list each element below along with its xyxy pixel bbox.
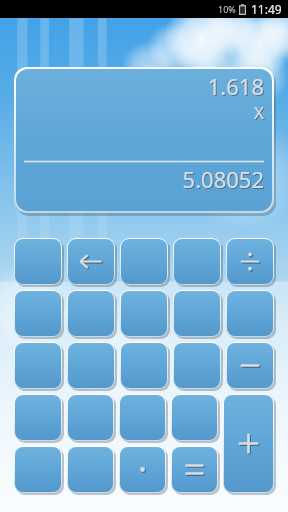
button[interactable]: +/- xyxy=(173,238,221,285)
staticText: 10% xyxy=(218,3,236,15)
button[interactable]: % xyxy=(120,238,168,285)
button[interactable]: C xyxy=(14,238,62,285)
button[interactable]: Plus xyxy=(223,394,274,493)
staticText: 1.618 xyxy=(25,72,265,102)
button[interactable]: 0 xyxy=(67,446,114,493)
staticText: X xyxy=(25,102,265,130)
button[interactable]: 4 xyxy=(67,342,115,389)
button[interactable]: MC xyxy=(14,446,62,493)
staticText: 11:49 xyxy=(251,1,282,17)
button[interactable]: 1 xyxy=(67,394,114,441)
button[interactable]: 7 xyxy=(67,290,115,337)
button[interactable]: 5 xyxy=(120,342,168,389)
button[interactable]: 2 xyxy=(119,394,166,441)
button[interactable]: X xyxy=(226,290,274,337)
button[interactable]: 6 xyxy=(173,342,221,389)
button[interactable]: M- xyxy=(14,342,62,389)
button[interactable]: MR xyxy=(14,394,62,441)
staticText: 5.08052 xyxy=(25,165,265,195)
staticText: 1.618 xyxy=(24,71,264,101)
button[interactable]: Backspace xyxy=(67,238,115,285)
button[interactable]: Divide xyxy=(226,238,274,285)
staticText: 5.08052 xyxy=(24,164,264,194)
button[interactable]: 9 xyxy=(173,290,221,337)
staticText: X xyxy=(24,101,264,129)
button[interactable]: Equals xyxy=(171,446,218,493)
button[interactable]: 3 xyxy=(171,394,218,441)
button[interactable]: M+ xyxy=(14,290,62,337)
button[interactable]: Minus xyxy=(226,342,274,389)
button[interactable]: Decimal point xyxy=(119,446,166,493)
button[interactable]: 8 xyxy=(120,290,168,337)
